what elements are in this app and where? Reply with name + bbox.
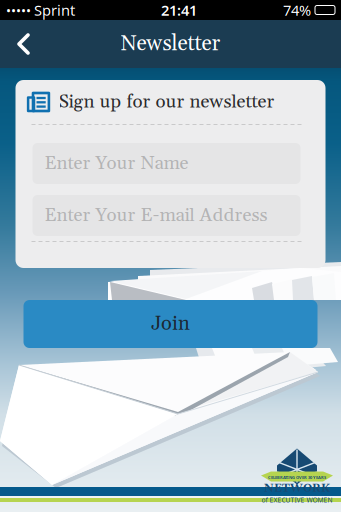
staticText: NETWORK (264, 481, 330, 496)
staticText: 21:41 (161, 0, 197, 20)
staticText: Newsletter (120, 30, 220, 58)
button[interactable]: Back (0, 20, 44, 68)
staticText: of EXECUTIVE WOMEN (261, 496, 332, 504)
staticText: ••••• (6, 1, 31, 19)
staticText: Enter Your E-mail Address (44, 204, 267, 227)
staticText: Sign up for our newsletter (58, 90, 274, 114)
staticText: Enter Your Name (44, 152, 188, 175)
button[interactable]: Join (23, 300, 317, 348)
staticText: 74% (283, 0, 311, 20)
staticText: Sprint (34, 0, 75, 20)
staticText: Join (151, 311, 190, 337)
staticText: CELEBRATING OVER 30 YEARS (268, 475, 326, 480)
